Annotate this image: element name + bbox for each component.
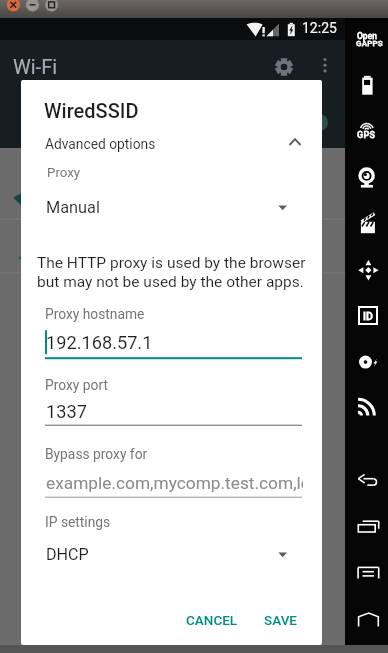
button[interactable]: Camera (355, 166, 381, 192)
staticText: 192.168.57.1 (46, 332, 153, 353)
button[interactable]: Settings (270, 53, 298, 81)
button[interactable]: Recent apps (355, 518, 381, 544)
button[interactable]: Cellular (356, 392, 380, 416)
button[interactable]: CANCEL (186, 605, 238, 635)
staticText: Proxy port (45, 377, 108, 393)
button[interactable]: Move (356, 258, 381, 283)
staticText: Manual (46, 198, 100, 217)
staticText: Proxy hostname (45, 306, 145, 322)
button[interactable]: Battery (357, 70, 383, 96)
button[interactable]: Home (355, 608, 381, 634)
staticText: 1337 (46, 401, 87, 422)
button[interactable]: Device ID (358, 306, 378, 325)
staticText: DHCP (46, 545, 89, 564)
staticText: 12:25 (302, 20, 337, 36)
staticText: ID (363, 310, 373, 322)
staticText: Open (357, 31, 377, 41)
button[interactable]: Snapshot (359, 354, 381, 376)
staticText: example.com,mycomp.test.com,localhost (46, 473, 303, 493)
button[interactable]: More options (313, 53, 337, 77)
staticText: GAPPS (356, 39, 383, 48)
button[interactable]: Location (355, 118, 379, 142)
button[interactable]: Menu (355, 560, 381, 586)
staticText: WiredSSID (44, 99, 139, 122)
button[interactable]: DHCP (21, 541, 322, 571)
staticText: GPS (357, 130, 376, 141)
button[interactable]: Back (355, 472, 381, 498)
button[interactable]: Advanced options (21, 132, 322, 156)
button[interactable]: Record screen (355, 208, 381, 234)
staticText: Bypass proxy for (45, 446, 148, 462)
staticText: The HTTP proxy is used by the browser bu… (37, 254, 311, 291)
staticText: Wi-Fi (13, 55, 58, 78)
staticText: Proxy (47, 165, 81, 181)
staticText: SAVE (264, 612, 298, 628)
staticText: Advanced options (45, 136, 156, 152)
staticText: CANCEL (186, 612, 238, 628)
button[interactable]: SAVE (264, 605, 298, 635)
staticText: IP settings (45, 514, 111, 530)
button[interactable]: Manual (21, 194, 322, 224)
